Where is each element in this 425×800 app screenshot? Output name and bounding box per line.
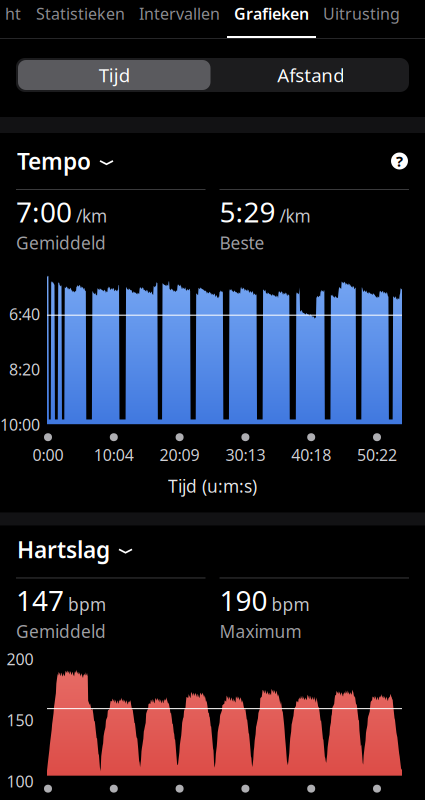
staticText: Gemiddeld xyxy=(16,620,106,643)
staticText: Hartslag xyxy=(17,534,110,564)
staticText: Tijd xyxy=(99,63,130,87)
staticText: Gemiddeld xyxy=(16,231,106,254)
staticText: Statistieken xyxy=(36,3,125,24)
staticText: 40:18 xyxy=(291,444,331,465)
staticText: Beste xyxy=(219,231,264,254)
staticText: Tijd (u:m:s) xyxy=(168,474,257,497)
staticText: 100 xyxy=(6,771,33,792)
staticText: 147 xyxy=(16,581,64,619)
staticText: /km xyxy=(76,204,107,227)
staticText: bpm xyxy=(271,593,309,616)
staticText: Maximum xyxy=(219,620,301,643)
staticText: 190 xyxy=(219,581,267,619)
staticText: 10:04 xyxy=(94,444,134,465)
button[interactable]: Tempo xyxy=(17,150,113,172)
button[interactable]: ht xyxy=(0,0,29,39)
button[interactable]: Tijd xyxy=(16,58,212,92)
staticText: 150 xyxy=(6,709,33,731)
button[interactable]: Grafieken xyxy=(227,0,316,39)
staticText: 20:09 xyxy=(160,444,200,465)
staticText: /km xyxy=(279,204,310,227)
button[interactable]: Hartslag xyxy=(17,538,132,560)
staticText: 0:00 xyxy=(32,444,63,465)
staticText: ht xyxy=(5,3,21,24)
staticText: 200 xyxy=(6,648,33,669)
button[interactable]: Intervallen xyxy=(132,0,227,39)
staticText: 10:00 xyxy=(0,414,40,435)
button[interactable]: Afstand xyxy=(212,58,409,92)
button[interactable]: Statistieken xyxy=(29,0,132,39)
staticText: 8:20 xyxy=(9,359,40,380)
staticText: Afstand xyxy=(277,63,344,87)
staticText: Uitrusting xyxy=(323,3,400,24)
button[interactable]: Uitrusting xyxy=(316,0,407,39)
staticText: 6:40 xyxy=(9,303,40,324)
staticText: 5:29 xyxy=(219,193,275,230)
staticText: Grafieken xyxy=(234,3,309,24)
staticText: Tempo xyxy=(17,146,91,176)
staticText: 30:13 xyxy=(225,444,265,465)
staticText: Intervallen xyxy=(139,3,220,24)
button[interactable]: Help xyxy=(391,152,408,169)
staticText: 7:00 xyxy=(16,193,72,230)
staticText: ? xyxy=(396,151,403,171)
staticText: bpm xyxy=(68,593,106,616)
staticText: 50:22 xyxy=(357,444,397,465)
